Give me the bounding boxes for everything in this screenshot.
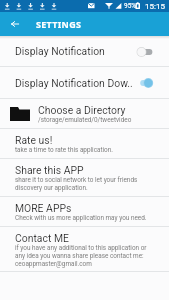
- staticText: Contact ME: [15, 232, 69, 244]
- staticText: Rate us!: [15, 134, 53, 146]
- button[interactable]: Display Notification Dow..: [0, 67, 169, 98]
- staticText: 95%: [124, 2, 137, 10]
- staticText: share it to social network to let your f…: [15, 176, 155, 192]
- staticText: Choose a Directory: [38, 104, 126, 116]
- staticText: Share this APP: [15, 164, 84, 176]
- button[interactable]: Back: [3, 12, 27, 36]
- button[interactable]: Share this APP: [0, 159, 169, 196]
- staticText: SETTINGS: [36, 18, 82, 30]
- staticText: Display Notification Dow..: [15, 77, 133, 89]
- staticText: /storage/emulated/0/tweetvideo: [38, 116, 132, 124]
- button[interactable]: Display Notification: [0, 36, 169, 66]
- button[interactable]: Choose a Directory: [0, 99, 169, 128]
- staticText: if you have any additional to this appli…: [15, 244, 155, 268]
- staticText: Display Notification: [15, 45, 133, 57]
- button[interactable]: MORE APPs: [0, 197, 169, 226]
- staticText: MORE APPs: [15, 202, 72, 214]
- staticText: Check with us more application may you n…: [15, 214, 147, 222]
- button[interactable]: Rate us!: [0, 129, 169, 158]
- staticText: take a time to rate this application.: [15, 146, 113, 154]
- staticText: 15:15: [145, 2, 165, 11]
- button[interactable]: Contact ME: [0, 227, 169, 271]
